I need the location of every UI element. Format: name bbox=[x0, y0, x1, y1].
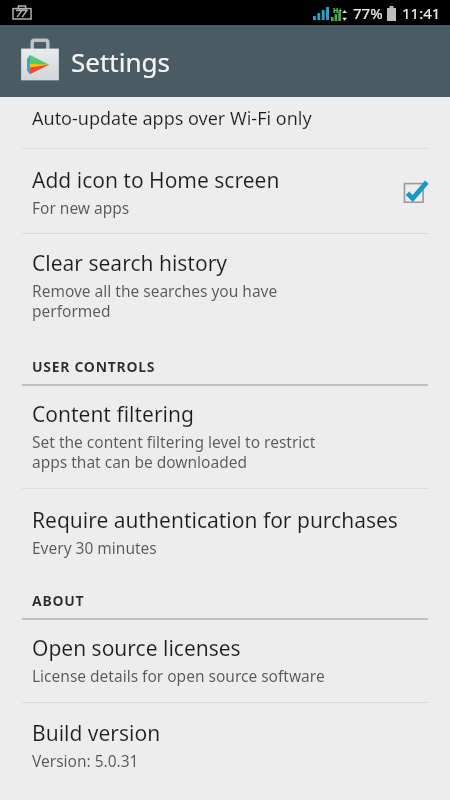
button[interactable]: Build version bbox=[0, 703, 450, 785]
staticText: Settings bbox=[71, 44, 170, 79]
staticText: Version: 5.0.31 bbox=[32, 750, 139, 771]
button[interactable]: Open source licenses bbox=[0, 620, 450, 702]
staticText: Set the content filtering level to restr… bbox=[32, 431, 316, 473]
staticText: H+ bbox=[333, 6, 343, 16]
staticText: Every 30 minutes bbox=[32, 537, 157, 558]
button[interactable]: Clear search history bbox=[0, 234, 450, 340]
staticText: For new apps bbox=[32, 197, 130, 218]
staticText: 77% bbox=[353, 3, 383, 23]
staticText: Open source licenses bbox=[32, 634, 241, 663]
staticText: License details for open source software bbox=[32, 665, 325, 686]
staticText: Remove all the searches you have perform… bbox=[32, 280, 278, 322]
staticText: Auto-update apps over Wi-Fi only bbox=[32, 106, 312, 131]
button[interactable]: Add icon to Home screen bbox=[400, 174, 436, 210]
button[interactable]: Content filtering bbox=[0, 386, 450, 488]
button[interactable]: Add icon to Home screen bbox=[0, 149, 450, 233]
staticText: ABOUT bbox=[32, 591, 85, 610]
staticText: 11:41 bbox=[402, 3, 441, 23]
staticText: Content filtering bbox=[32, 400, 194, 429]
staticText: Clear search history bbox=[32, 249, 228, 278]
staticText: USER CONTROLS bbox=[32, 357, 156, 376]
staticText: Add icon to Home screen bbox=[32, 166, 280, 195]
button[interactable]: Auto-update apps over Wi-Fi only bbox=[0, 106, 450, 133]
staticText: Build version bbox=[32, 719, 161, 748]
staticText: Require authentication for purchases bbox=[32, 506, 398, 535]
button[interactable]: Require authentication for purchases bbox=[0, 489, 450, 574]
